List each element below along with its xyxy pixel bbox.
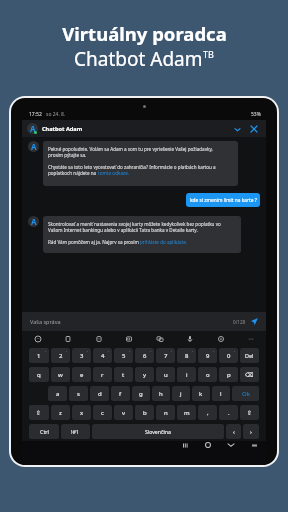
button[interactable]: Emoji [33, 334, 42, 343]
staticText: · [45, 348, 47, 354]
button[interactable]: Translate [155, 334, 164, 343]
button[interactable]: t [114, 367, 133, 382]
staticText: A [31, 216, 37, 227]
button[interactable]: Clipboard [63, 334, 72, 343]
button[interactable]: Ctrl [29, 424, 59, 439]
staticText: . [228, 409, 230, 417]
staticText: ⇧ [36, 409, 42, 416]
button[interactable]: Vaša správa [30, 312, 258, 331]
staticText: Skontrolovať a meniť nastavenia svojej k… [48, 221, 221, 227]
staticText: w [58, 371, 63, 379]
button[interactable]: Sticker [94, 334, 103, 343]
staticText: j [180, 390, 182, 398]
button[interactable]: Minimize [232, 124, 242, 134]
button[interactable]: n [156, 405, 175, 420]
button[interactable]: › [243, 424, 259, 439]
staticText: n [164, 409, 168, 417]
button[interactable]: Settings [216, 334, 225, 343]
button[interactable]: g [132, 386, 150, 401]
button[interactable]: Back [225, 439, 237, 451]
staticText: A [30, 123, 36, 134]
staticText: f [119, 390, 122, 398]
button[interactable]: 9 [198, 348, 217, 363]
button[interactable]: Del [240, 348, 259, 363]
button[interactable]: 1 [29, 348, 49, 363]
button[interactable]: o [198, 367, 217, 382]
button[interactable]: y [135, 367, 154, 382]
button[interactable]: 3 [72, 348, 91, 363]
staticText: 9 [206, 352, 210, 360]
button[interactable]: a [48, 386, 67, 401]
button[interactable]: u [156, 367, 175, 382]
staticText: · [66, 348, 68, 354]
button[interactable]: b [135, 405, 154, 420]
button[interactable]: !#1 [61, 424, 90, 439]
staticText: 2 [59, 352, 63, 360]
staticText: 7 [164, 352, 168, 360]
button[interactable]: 0 [219, 348, 238, 363]
button[interactable]: l [212, 386, 230, 401]
button[interactable]: 5 [114, 348, 133, 363]
button[interactable]: Ok [232, 386, 259, 401]
button[interactable]: 8 [177, 348, 196, 363]
staticText: · [129, 348, 131, 354]
staticText: ‹ [233, 428, 235, 436]
staticText: Del [245, 352, 254, 359]
button[interactable]: More [246, 334, 255, 343]
button[interactable]: Recents [179, 439, 191, 451]
button[interactable]: 7 [156, 348, 175, 363]
button[interactable]: ⇧ [240, 405, 259, 420]
staticText: p [227, 371, 231, 379]
staticText: Chystáte sa toto leto vycestovať do zahr… [48, 164, 216, 170]
staticText: m [184, 409, 190, 417]
staticText: t [122, 371, 125, 379]
button[interactable]: s [69, 386, 88, 401]
button[interactable]: v [114, 405, 133, 420]
button[interactable]: i [177, 367, 196, 382]
staticText: l [220, 390, 222, 398]
button[interactable]: 2 [51, 348, 70, 363]
button[interactable]: Home [202, 439, 214, 451]
button[interactable]: 6 [135, 348, 154, 363]
button[interactable]: GIF [124, 334, 133, 343]
staticText: 6 [143, 352, 147, 360]
staticText: 53% [251, 111, 261, 118]
button[interactable]: Voice [185, 334, 194, 343]
button[interactable]: 4 [93, 348, 112, 363]
button[interactable]: q [29, 367, 49, 382]
button[interactable]: Close [249, 124, 259, 134]
button[interactable]: x [72, 405, 91, 420]
button[interactable]: ‹ [226, 424, 241, 439]
button[interactable]: m [177, 405, 196, 420]
button[interactable]: k [192, 386, 210, 401]
staticText: !#1 [71, 428, 80, 435]
button[interactable]: e [72, 367, 91, 382]
staticText: so 24. 8. [46, 111, 66, 118]
button[interactable]: j [172, 386, 190, 401]
staticText: · [108, 348, 110, 354]
button[interactable]: f [111, 386, 130, 401]
button[interactable]: . [219, 405, 238, 420]
button[interactable]: p [219, 367, 238, 382]
button[interactable]: ⇧ [29, 405, 49, 420]
button[interactable]: r [93, 367, 112, 382]
button[interactable]: w [51, 367, 70, 382]
staticText: · [213, 348, 215, 354]
button[interactable]: d [90, 386, 109, 401]
staticText: · [150, 348, 152, 354]
button[interactable]: Slovenčina [92, 424, 224, 439]
staticText: Ctrl [40, 428, 49, 435]
staticText: Vaša správa [30, 318, 61, 325]
staticText: ⌫ [245, 371, 254, 378]
staticText: Rád Vám pomôžem aj ja. Najprv sa prosím [48, 239, 140, 245]
staticText: · [87, 348, 89, 354]
button[interactable]: kde si zmením limit na karte ? [186, 193, 260, 207]
button[interactable]: h [152, 386, 170, 401]
staticText: a [56, 390, 60, 398]
button[interactable]: z [51, 405, 70, 420]
staticText: · [171, 348, 173, 354]
button[interactable]: Keyboard [248, 439, 260, 451]
button[interactable]: , [198, 405, 217, 420]
button[interactable]: ⌫ [240, 367, 259, 382]
button[interactable]: c [93, 405, 112, 420]
